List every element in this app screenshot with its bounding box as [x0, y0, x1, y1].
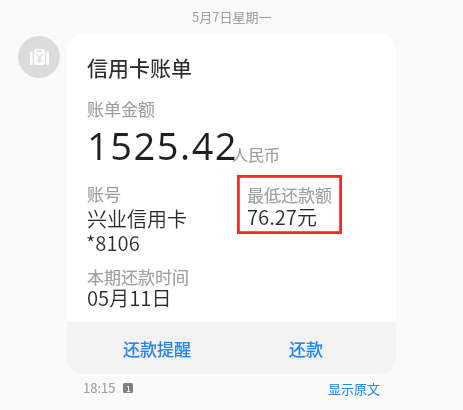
button[interactable]: 还款 — [241, 322, 371, 374]
staticText: 最低还款额 — [247, 182, 332, 207]
staticText: 还款提醒 — [123, 336, 191, 361]
staticText: 还款 — [289, 336, 323, 361]
staticText: 1525.42 — [87, 119, 239, 171]
staticText: 本期还款时间 — [87, 264, 189, 289]
staticText: 人民币 — [232, 142, 281, 165]
staticText: 账号 — [87, 181, 121, 206]
staticText: 05月11日 — [87, 283, 172, 312]
staticText: 兴业信用卡 — [87, 204, 187, 233]
button[interactable]: 显示原文 — [328, 379, 381, 398]
staticText: 18:15 — [83, 378, 116, 397]
button[interactable]: 信用卡账单 — [67, 34, 396, 374]
staticText: 显示原文 — [328, 379, 381, 398]
staticText: 5月7日星期一 — [192, 7, 272, 26]
staticText: 1 — [126, 383, 131, 393]
staticText: 信用卡账单 — [87, 52, 192, 82]
other: SIM 1 — [123, 383, 133, 393]
staticText: 账单金额 — [87, 96, 155, 121]
button[interactable]: 还款提醒 — [87, 322, 227, 374]
staticText: *8106 — [86, 228, 140, 257]
staticText: 76.27元 — [247, 202, 317, 231]
button[interactable]: Bill notification sender — [18, 36, 60, 78]
